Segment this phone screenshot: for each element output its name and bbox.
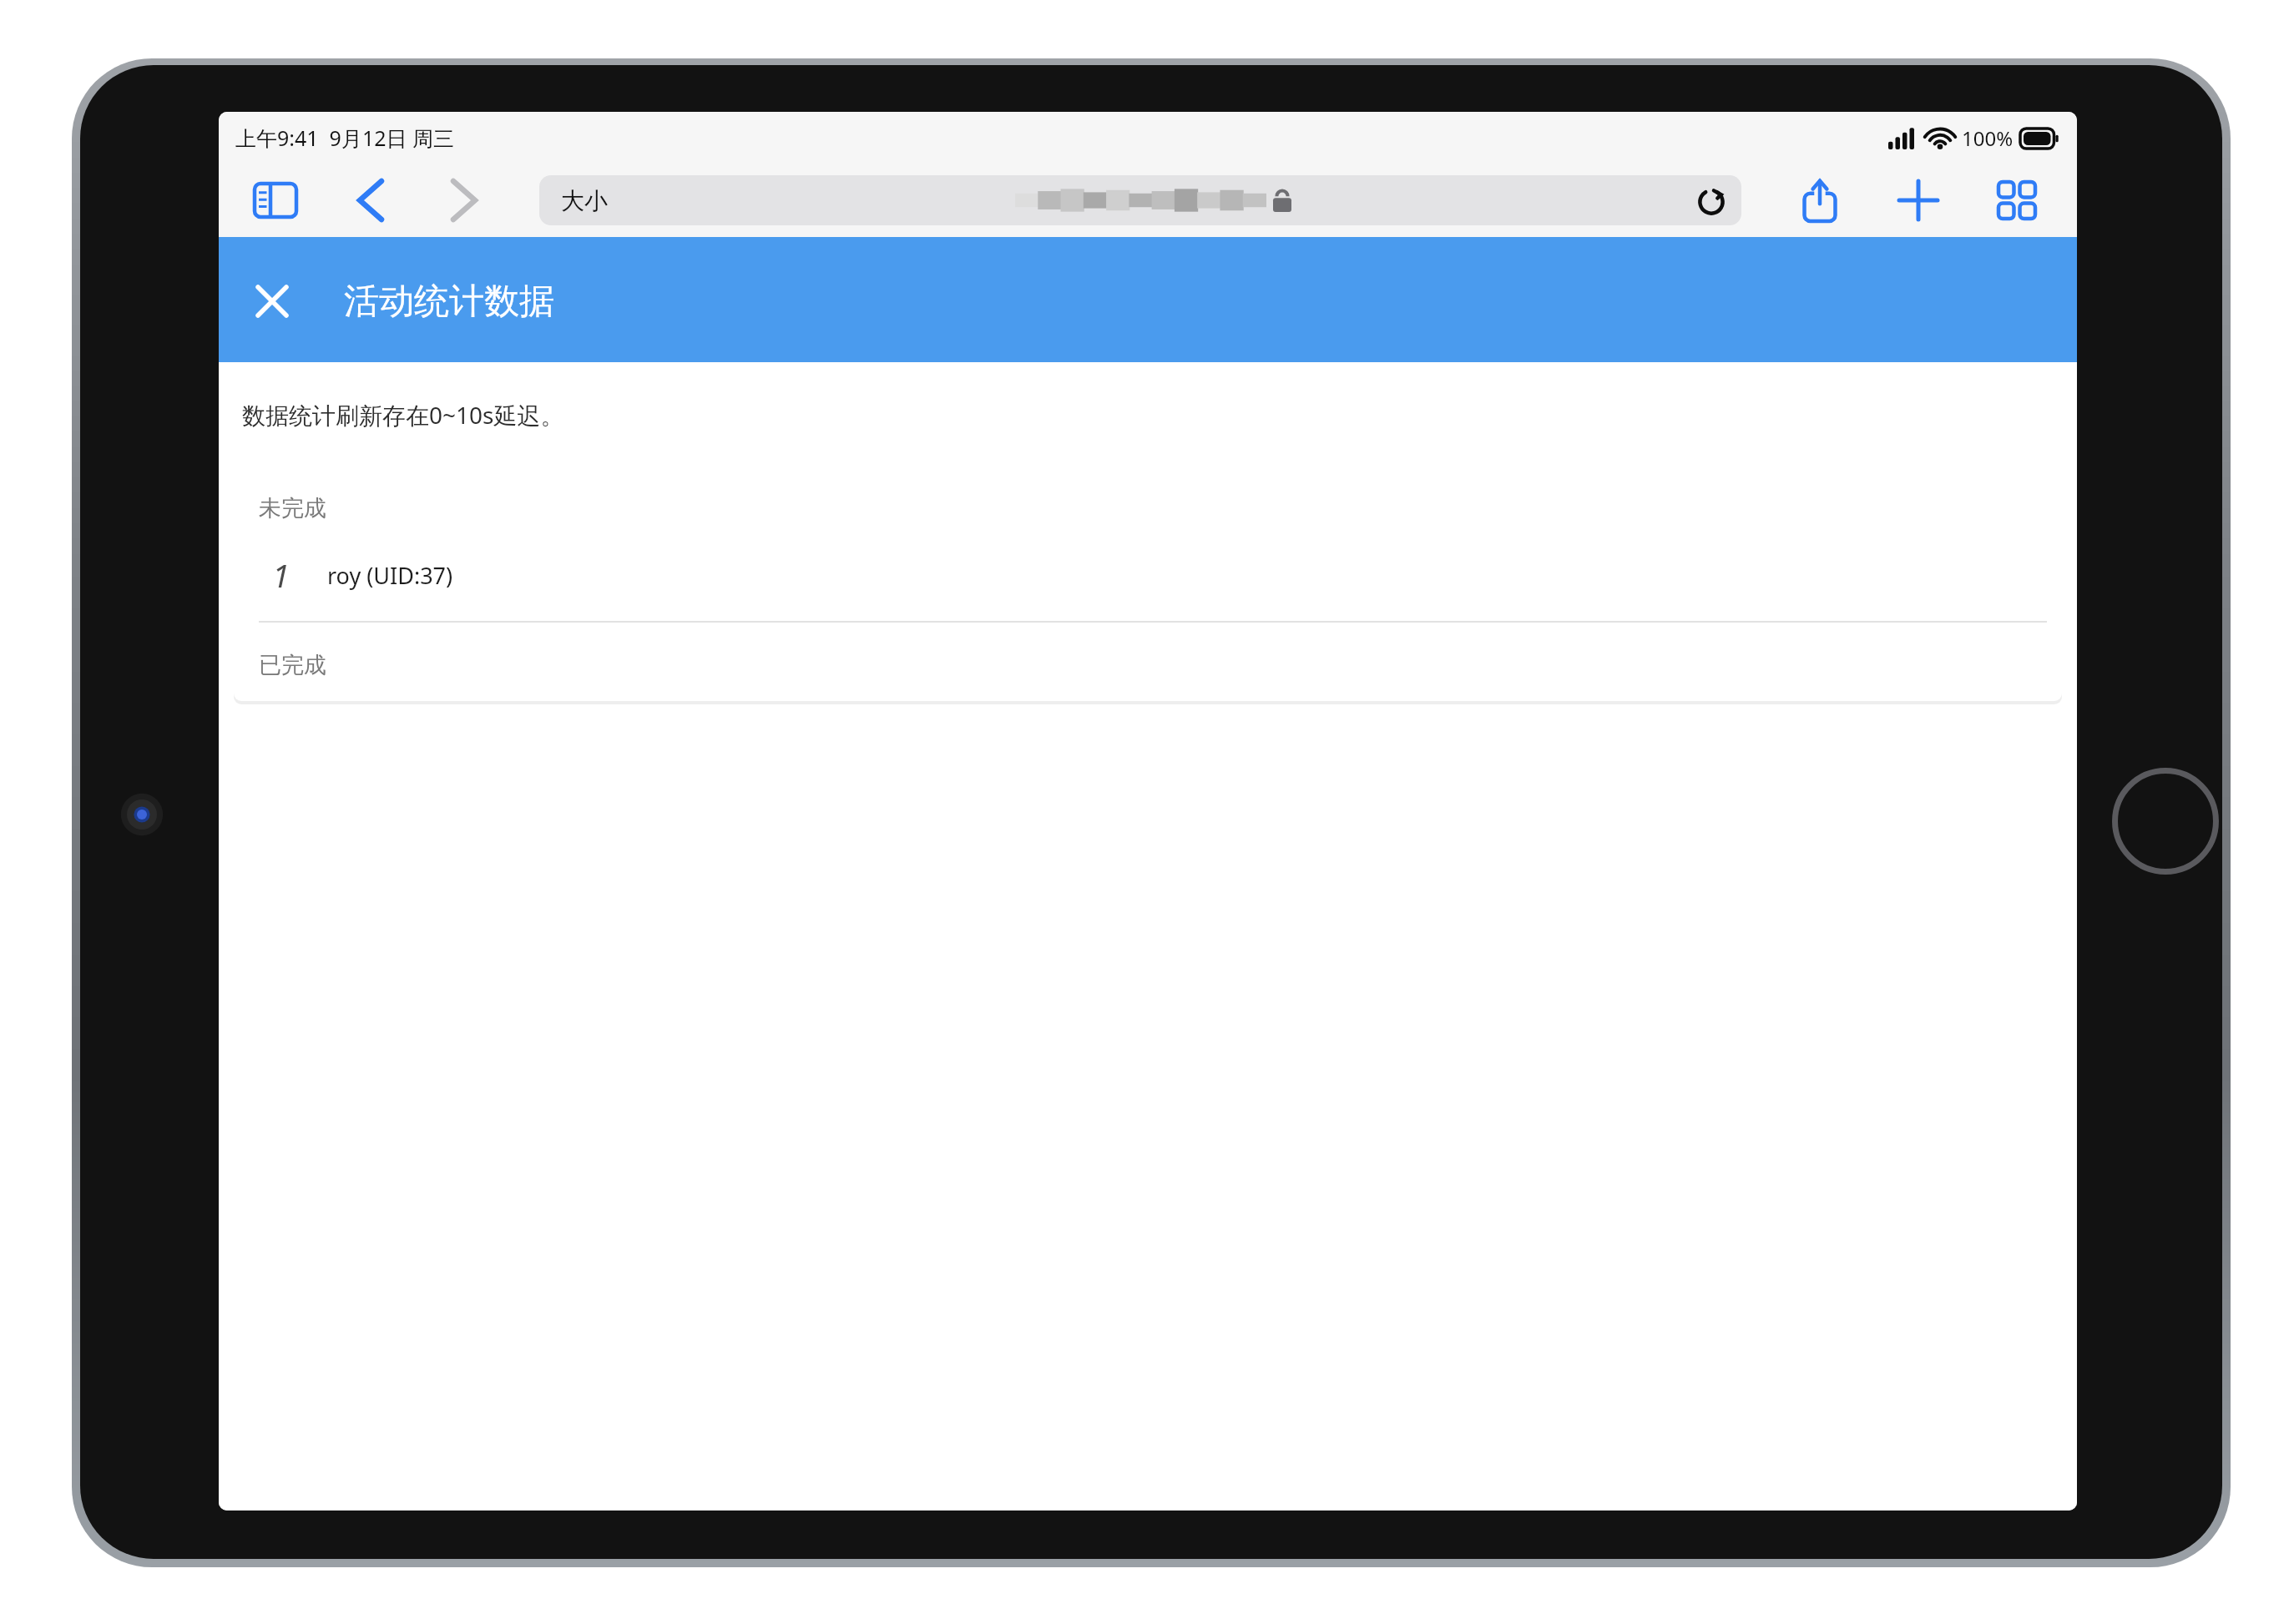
button[interactable]: 1 (234, 551, 2062, 599)
staticText: 数据统计刷新存在0~10s延迟。 (242, 399, 564, 431)
staticText: 1 (272, 553, 290, 597)
staticText: 上午9:41 9月12日 周三 (235, 124, 455, 152)
button[interactable]: Show sidebar (249, 174, 302, 227)
staticText: 未完成 (259, 494, 326, 522)
staticText: 已完成 (259, 651, 326, 679)
button[interactable]: Share (1793, 174, 1847, 227)
button[interactable]: New tab (1892, 174, 1945, 227)
button[interactable]: Show all tabs (1990, 174, 2044, 227)
staticText: 大小 (561, 186, 608, 215)
staticText: roy (UID:37) (327, 560, 453, 591)
button[interactable]: Close (242, 271, 302, 331)
button[interactable]: Back (344, 174, 397, 227)
button[interactable]: Forward (437, 174, 491, 227)
staticText: 活动统计数据 (344, 280, 554, 324)
button[interactable]: 大小 (539, 175, 1741, 225)
button[interactable]: Reload (1690, 179, 1733, 222)
staticText: 100% (1962, 124, 2014, 152)
